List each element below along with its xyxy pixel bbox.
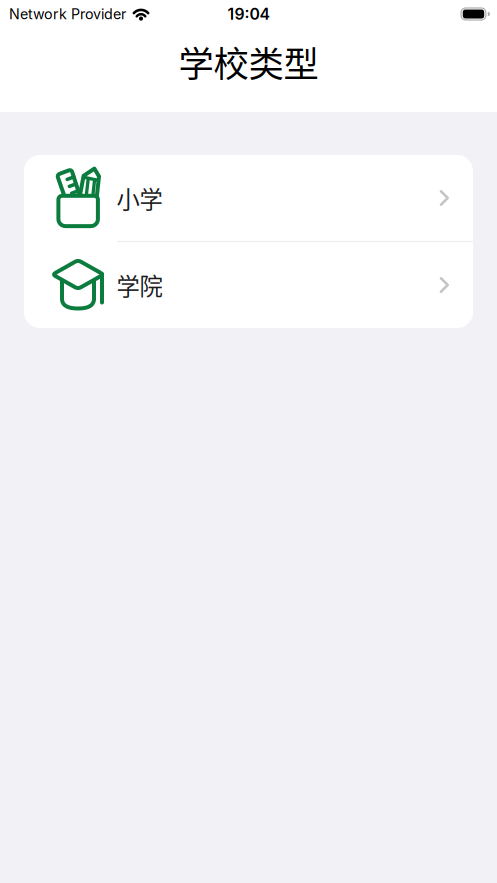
- staticText: 学校类型: [178, 36, 318, 87]
- staticText: 学院: [116, 268, 162, 302]
- button[interactable]: 学院: [24, 242, 473, 328]
- staticText: Network Provider: [9, 5, 126, 23]
- button[interactable]: 小学: [24, 155, 473, 241]
- staticText: 小学: [116, 181, 162, 215]
- staticText: 19:04: [227, 4, 269, 23]
